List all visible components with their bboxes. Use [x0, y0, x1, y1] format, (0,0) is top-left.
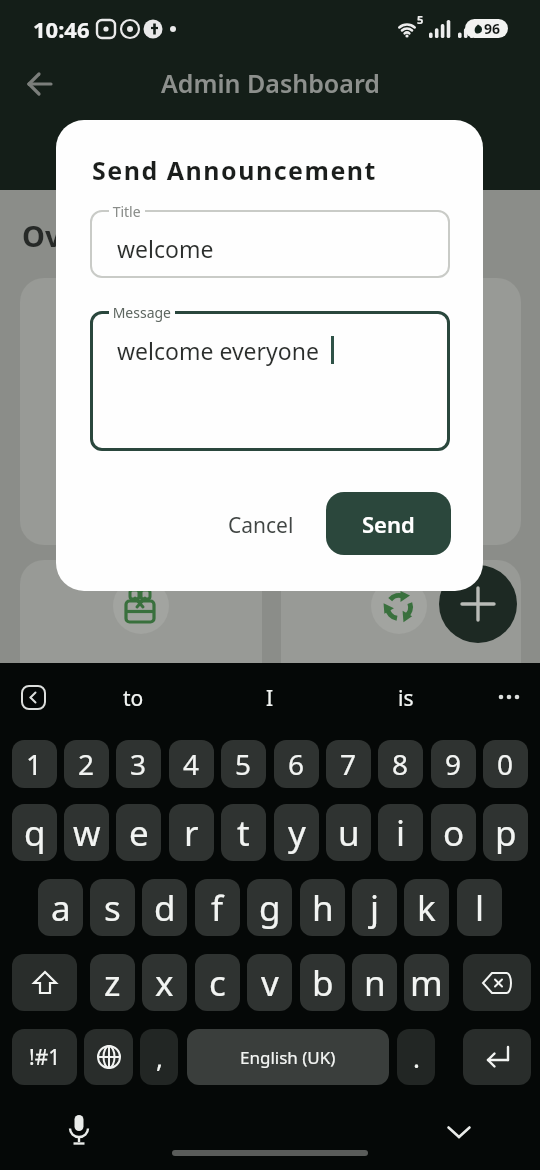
staticText: Cancel	[228, 511, 294, 540]
button[interactable]: n	[352, 954, 397, 1011]
button[interactable]	[20, 64, 60, 104]
staticText: d	[154, 884, 176, 932]
button[interactable]: I	[225, 678, 315, 718]
staticText: t	[237, 809, 250, 857]
staticText: Overview	[22, 216, 159, 250]
button[interactable]: v	[247, 954, 292, 1011]
staticText: 96	[484, 19, 501, 38]
button[interactable]: h	[300, 879, 345, 936]
button[interactable]: .	[397, 1029, 435, 1085]
button[interactable]: 2	[64, 740, 109, 788]
staticText: 9	[445, 745, 462, 783]
button[interactable]: to	[88, 678, 178, 718]
staticText: q	[24, 809, 46, 857]
button[interactable]: t	[221, 804, 266, 861]
button[interactable]: 9	[431, 740, 476, 788]
button[interactable]: o	[431, 804, 476, 861]
button[interactable]: u	[326, 804, 371, 861]
staticText: y	[288, 809, 306, 857]
button[interactable]: e	[116, 804, 161, 861]
staticText: English (UK)	[240, 1046, 336, 1069]
button[interactable]	[12, 954, 77, 1011]
button[interactable]: 0	[483, 740, 528, 788]
button[interactable]	[15, 679, 51, 715]
staticText: m	[410, 959, 443, 1007]
button[interactable]: x	[142, 954, 187, 1011]
button[interactable]: f	[195, 879, 240, 936]
button[interactable]: 6	[274, 740, 319, 788]
button[interactable]: !#1	[12, 1029, 77, 1085]
staticText: Title	[109, 202, 145, 221]
staticText: Send Announcement	[92, 153, 377, 181]
button[interactable]: l	[457, 879, 502, 936]
staticText: to	[123, 684, 144, 713]
staticText: z	[104, 959, 121, 1007]
button[interactable]	[492, 680, 526, 714]
staticText: welcome	[117, 233, 214, 264]
button[interactable]: m	[404, 954, 449, 1011]
button[interactable]	[90, 210, 450, 278]
button[interactable]: k	[404, 879, 449, 936]
button[interactable]: 5	[221, 740, 266, 788]
button[interactable]: z	[90, 954, 135, 1011]
button[interactable]	[59, 1110, 99, 1152]
staticText: w	[73, 809, 101, 857]
button[interactable]: s	[90, 879, 135, 936]
button[interactable]: w	[64, 804, 109, 861]
staticText: l	[475, 884, 485, 932]
staticText: o	[443, 809, 465, 857]
staticText: 7	[340, 745, 357, 783]
button[interactable]: Cancel	[222, 500, 300, 550]
staticText: 1	[26, 745, 43, 783]
button[interactable]: Send	[326, 492, 451, 555]
button[interactable]: 3	[116, 740, 161, 788]
button[interactable]: p	[483, 804, 528, 861]
staticText: Message	[109, 303, 175, 322]
staticText: u	[338, 809, 360, 857]
staticText: r	[184, 809, 199, 857]
button[interactable]: i	[378, 804, 423, 861]
button[interactable]: 7	[326, 740, 371, 788]
staticText: e	[129, 809, 149, 857]
staticText: f	[211, 884, 224, 932]
button[interactable]: a	[38, 879, 83, 936]
button[interactable]: q	[12, 804, 57, 861]
button[interactable]	[463, 954, 531, 1011]
staticText: 3	[130, 745, 147, 783]
button[interactable]: c	[195, 954, 240, 1011]
button[interactable]: g	[247, 879, 292, 936]
button[interactable]	[439, 1112, 479, 1152]
button[interactable]	[463, 1029, 531, 1085]
button[interactable]: d	[142, 879, 187, 936]
staticText: is	[398, 684, 414, 713]
staticText: a	[51, 884, 71, 932]
button[interactable]: b	[300, 954, 345, 1011]
staticText: g	[259, 884, 281, 932]
button[interactable]: is	[361, 678, 451, 718]
button[interactable]: English (UK)	[187, 1029, 389, 1085]
staticText: s	[104, 884, 121, 932]
staticText: 0	[497, 745, 514, 783]
button[interactable]: 1	[12, 740, 57, 788]
button[interactable]	[84, 1029, 133, 1085]
staticText: .	[413, 1040, 420, 1075]
staticText: I	[266, 684, 274, 713]
button[interactable]	[439, 565, 517, 643]
staticText: 2	[78, 745, 95, 783]
staticText: j	[370, 884, 380, 932]
staticText: ,	[156, 1040, 163, 1075]
button[interactable]: 8	[378, 740, 423, 788]
staticText: 5	[417, 12, 424, 27]
staticText: b	[312, 959, 334, 1007]
button[interactable]: y	[274, 804, 319, 861]
button[interactable]	[90, 311, 450, 451]
staticText: Send	[362, 509, 415, 539]
button[interactable]: ,	[140, 1029, 178, 1085]
staticText: 4	[183, 745, 200, 783]
button[interactable]: r	[169, 804, 214, 861]
staticText: h	[312, 884, 334, 932]
button[interactable]: 4	[169, 740, 214, 788]
staticText: v	[261, 959, 279, 1007]
staticText: 10:46	[33, 14, 90, 42]
button[interactable]: j	[352, 879, 397, 936]
